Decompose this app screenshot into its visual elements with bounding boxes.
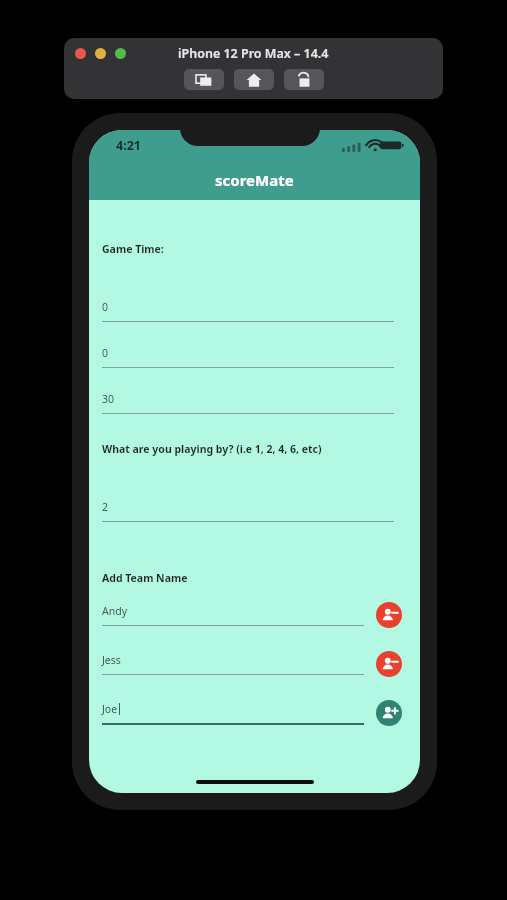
staticText: Game Time: bbox=[102, 242, 164, 256]
button[interactable]: Screenshot bbox=[184, 69, 224, 90]
button[interactable]: 30 bbox=[102, 392, 394, 414]
staticText: 4:21 bbox=[116, 137, 141, 154]
button[interactable]: Andy bbox=[102, 604, 364, 626]
staticText: 0 bbox=[102, 300, 109, 314]
button[interactable]: Remove team bbox=[376, 651, 402, 677]
staticText: 2 bbox=[102, 500, 109, 514]
staticText: iPhone 12 Pro Max – 14.4 bbox=[178, 45, 329, 62]
staticText: Joe bbox=[102, 702, 118, 716]
button[interactable]: 0 bbox=[102, 346, 394, 368]
button[interactable]: Jess bbox=[102, 653, 364, 675]
staticText: Andy bbox=[102, 604, 128, 618]
button[interactable]: Rotate bbox=[284, 69, 324, 90]
staticText: What are you playing by? (i.e 1, 2, 4, 6… bbox=[102, 442, 322, 456]
button[interactable]: Joe bbox=[102, 702, 364, 725]
staticText: 0 bbox=[102, 346, 109, 360]
staticText: Jess bbox=[102, 653, 121, 667]
button[interactable]: 2 bbox=[102, 500, 394, 522]
button[interactable]: Home bbox=[234, 69, 274, 90]
button[interactable]: 0 bbox=[102, 300, 394, 322]
button[interactable]: Add team bbox=[376, 700, 402, 726]
staticText: scoreMate bbox=[215, 170, 294, 190]
button[interactable]: Remove team bbox=[376, 602, 402, 628]
staticText: 30 bbox=[102, 392, 115, 406]
staticText: Add Team Name bbox=[102, 571, 188, 585]
